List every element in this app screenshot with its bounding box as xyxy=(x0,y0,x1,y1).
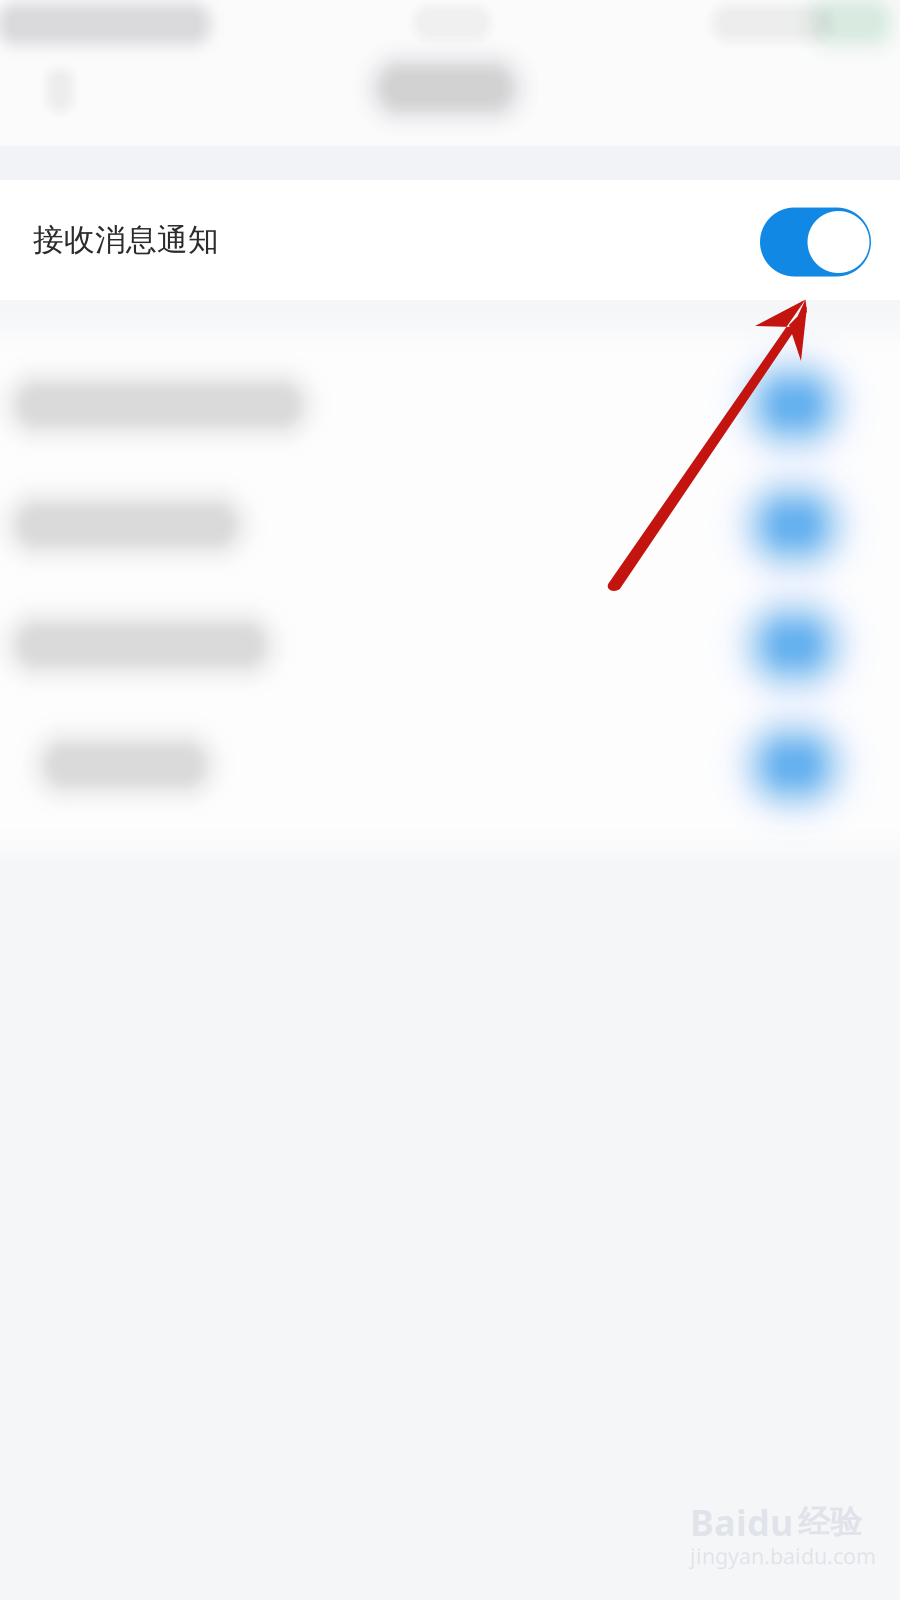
button[interactable]: 接收消息通知 xyxy=(0,180,900,300)
staticText: jingyan.baidu.com xyxy=(690,1542,876,1570)
staticText: 接收消息通知 xyxy=(33,221,219,259)
staticText: 经验 xyxy=(798,1502,862,1542)
staticText: Baidu xyxy=(690,1498,793,1546)
